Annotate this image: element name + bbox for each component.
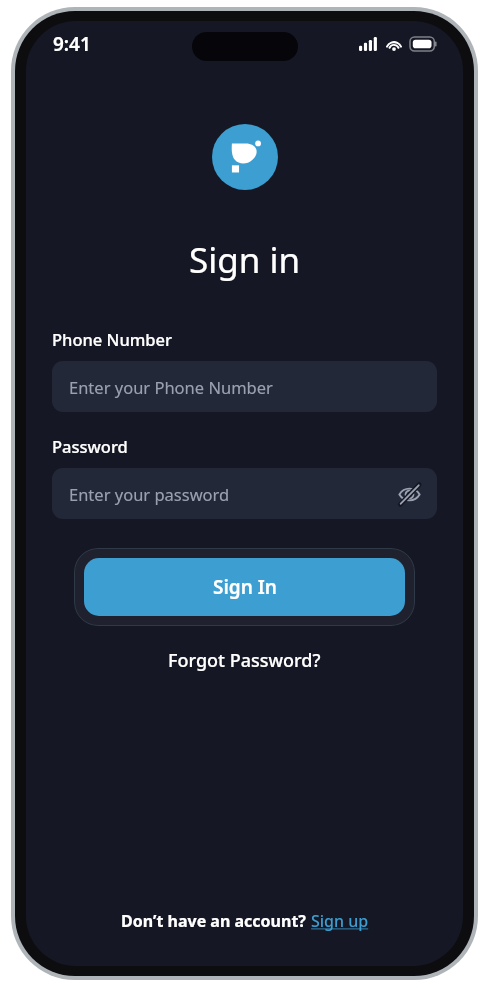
button[interactable]: Enter your password: [52, 468, 437, 519]
button[interactable]: Sign up: [311, 910, 369, 932]
button[interactable]: Sign In: [74, 548, 415, 626]
staticText: Sign up: [311, 910, 369, 932]
button[interactable]: Forgot Password?: [158, 643, 331, 678]
staticText: Enter your Phone Number: [69, 376, 273, 398]
staticText: Enter your password: [69, 483, 230, 505]
staticText: Forgot Password?: [168, 648, 321, 673]
staticText: Password: [52, 435, 128, 457]
button[interactable]: Enter your Phone Number: [52, 361, 437, 412]
staticText: Phone Number: [52, 328, 173, 350]
staticText: Sign in: [189, 236, 301, 284]
button[interactable]: Show password: [391, 476, 427, 512]
staticText: Don’t have an account?: [121, 910, 311, 932]
staticText: Sign In: [213, 574, 277, 600]
staticText: 9:41: [53, 31, 91, 57]
